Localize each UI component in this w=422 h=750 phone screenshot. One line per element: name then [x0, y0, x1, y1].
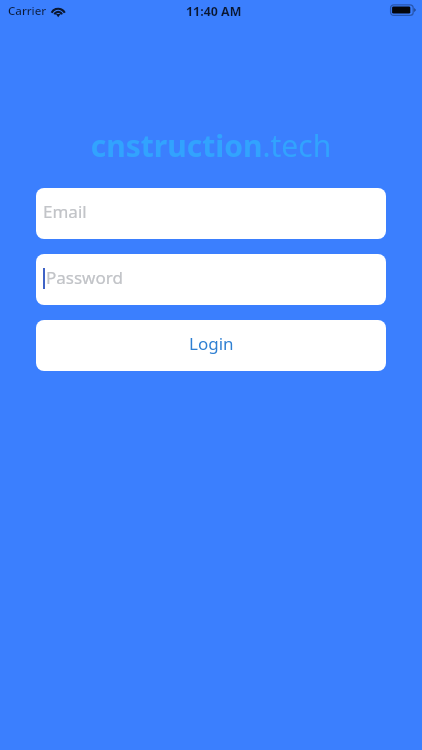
button[interactable]: Login: [36, 320, 386, 371]
staticText: Email: [43, 200, 87, 223]
other: Wi-Fi signal: [50, 3, 68, 18]
button[interactable]: Email: [36, 188, 386, 239]
staticText: Password: [46, 266, 123, 289]
staticText: Carrier: [8, 3, 47, 19]
other: Battery full: [390, 4, 418, 16]
button[interactable]: Password: [36, 254, 386, 305]
staticText: Login: [189, 332, 234, 355]
staticText: cnstruction.tech: [0, 125, 422, 166]
staticText: 11:40 AM: [186, 3, 242, 20]
